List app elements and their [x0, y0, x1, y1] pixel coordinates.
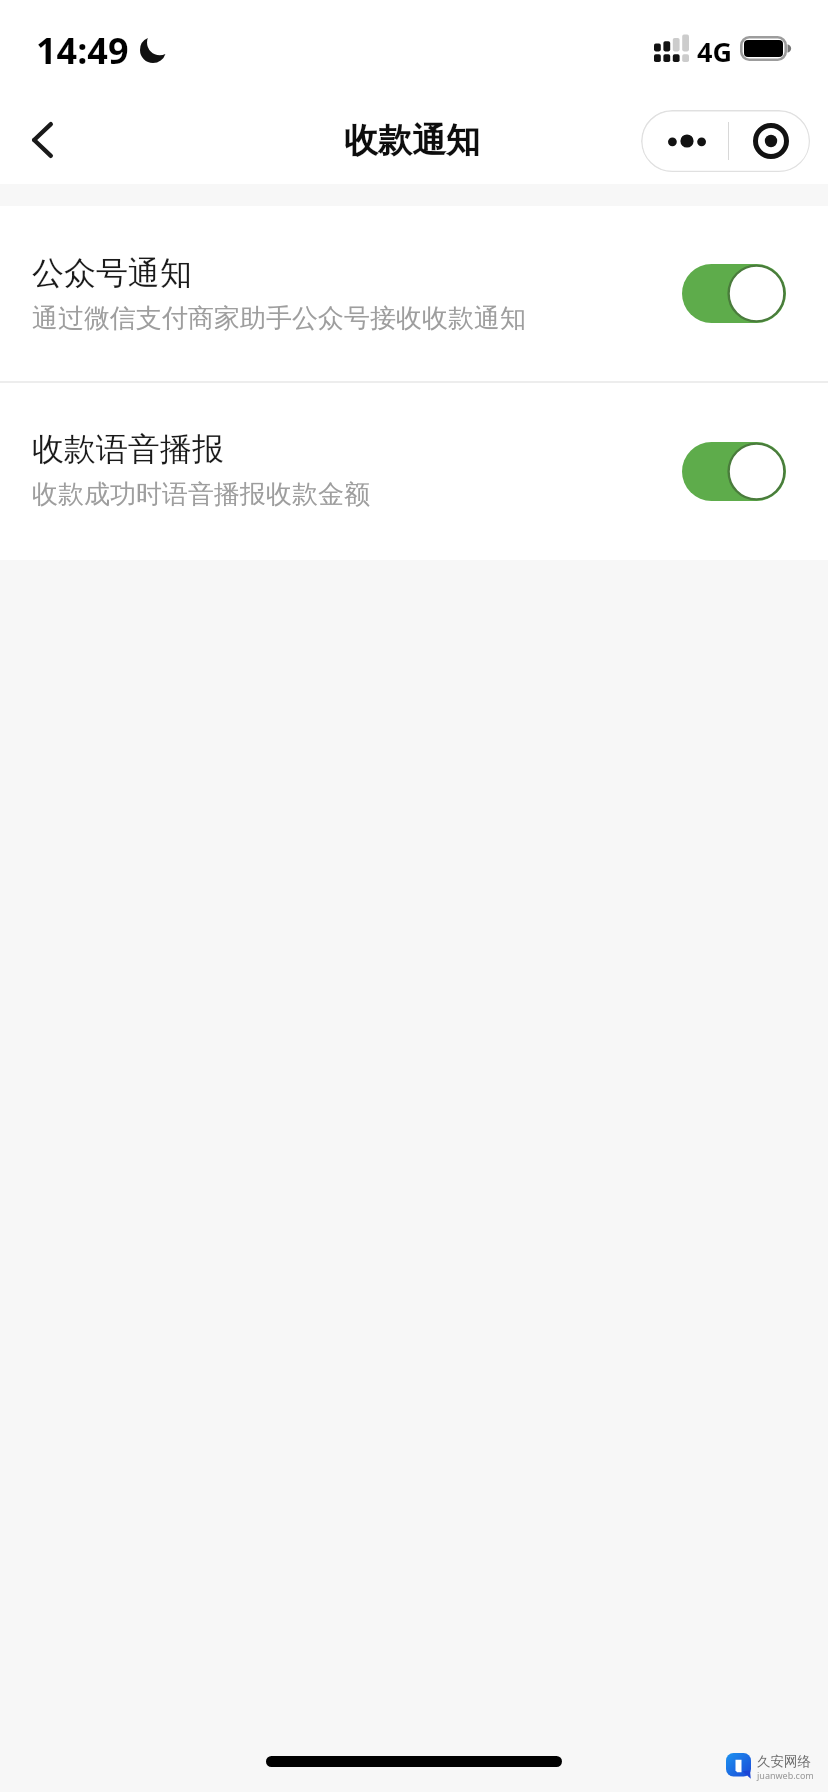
- button[interactable]: More options: [641, 110, 727, 172]
- button[interactable]: Toggle switch, on: [682, 264, 786, 323]
- button[interactable]: Close: [728, 110, 810, 172]
- staticText: 4G: [697, 33, 732, 70]
- staticText: 收款通知: [344, 119, 480, 162]
- button[interactable]: 公众号通知: [0, 206, 828, 381]
- staticText: 收款成功时语音播报收款金额: [32, 478, 370, 511]
- button[interactable]: Toggle switch, on: [682, 442, 786, 501]
- staticText: 通过微信支付商家助手公众号接收收款通知: [32, 302, 526, 335]
- staticText: 14:49: [36, 26, 129, 75]
- staticText: 久安网络: [757, 1753, 811, 1770]
- staticText: 收款语音播报: [32, 429, 224, 469]
- staticText: 公众号通知: [32, 253, 192, 293]
- staticText: juanweb.com: [757, 1769, 814, 1781]
- button[interactable]: 收款语音播报: [0, 383, 828, 560]
- button[interactable]: Back: [0, 92, 86, 184]
